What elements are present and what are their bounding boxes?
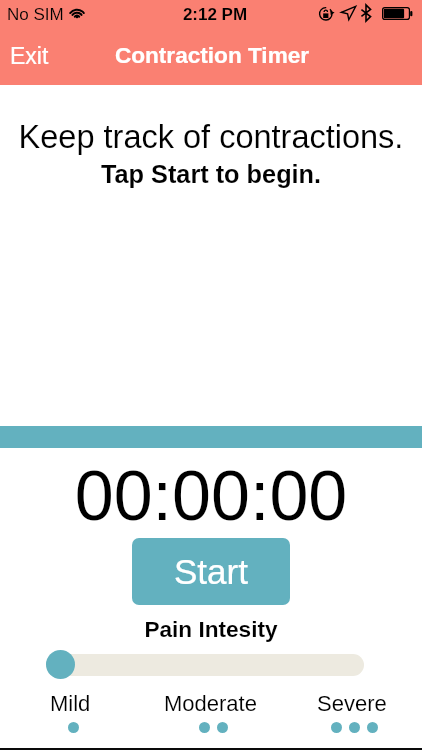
button[interactable]: Pain intensity slider bbox=[46, 650, 75, 679]
button[interactable]: Exit bbox=[0, 31, 63, 81]
staticText: 2:12 PM bbox=[4, 5, 422, 24]
staticText: Moderate bbox=[164, 691, 257, 716]
staticText: Start bbox=[174, 552, 248, 591]
staticText: No SIM bbox=[7, 5, 64, 24]
staticText: 00:00:00 bbox=[0, 457, 422, 535]
staticText: Pain Intesity bbox=[0, 617, 422, 642]
staticText: Exit bbox=[10, 43, 49, 69]
staticText: Mild bbox=[50, 691, 91, 716]
staticText: Contraction Timer bbox=[1, 43, 422, 68]
staticText: Tap Start to begin. bbox=[0, 160, 422, 188]
staticText: Keep track of contractions. bbox=[0, 119, 422, 155]
button[interactable]: Start bbox=[132, 538, 290, 605]
staticText: Severe bbox=[317, 691, 387, 716]
